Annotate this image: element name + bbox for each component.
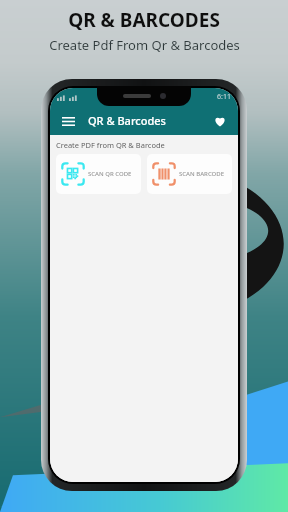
staticText: 6:11 xyxy=(217,92,231,102)
button[interactable]: Favorites xyxy=(211,112,229,130)
staticText: SCAN QR CODE xyxy=(88,170,132,178)
staticText: SCAN BARCODE xyxy=(179,170,225,178)
staticText: Create Pdf From Qr & Barcodes xyxy=(49,36,240,54)
button[interactable]: SCAN QR CODE xyxy=(56,154,141,194)
button[interactable]: Open navigation menu xyxy=(59,112,77,130)
staticText: QR & BARCODES xyxy=(68,7,220,33)
staticText: QR & Barcodes xyxy=(88,113,166,128)
button[interactable]: SCAN BARCODE xyxy=(147,154,232,194)
staticText: Create PDF from QR & Barcode xyxy=(56,140,165,150)
